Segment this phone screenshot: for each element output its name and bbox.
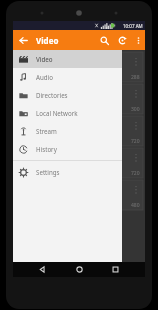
button[interactable]: Settings <box>13 163 122 181</box>
button[interactable]: More options <box>131 33 145 47</box>
button[interactable]: Recents <box>108 262 123 277</box>
staticText: 10:07 AM <box>123 23 143 29</box>
button[interactable]: History <box>13 140 122 158</box>
staticText: Audio <box>36 73 53 81</box>
button[interactable]: Search <box>95 31 113 49</box>
staticText: 720 <box>131 138 140 145</box>
staticText: 480 <box>131 202 140 209</box>
staticText: History <box>36 145 57 153</box>
button[interactable]: 288 <box>15 52 143 82</box>
button[interactable]: Back <box>13 30 33 50</box>
staticText: Local Network <box>36 109 78 117</box>
staticText: Stream <box>36 127 57 135</box>
staticText: 288 <box>131 74 140 81</box>
button[interactable]: Refresh <box>113 31 131 49</box>
button[interactable]: 480 <box>15 180 143 210</box>
staticText: 300 <box>131 106 140 113</box>
button[interactable]: 720 <box>15 148 143 178</box>
button[interactable]: Video <box>13 50 122 68</box>
button[interactable]: Stream <box>13 122 122 140</box>
button[interactable]: 300 <box>15 84 143 114</box>
button[interactable]: Back <box>35 262 50 277</box>
staticText: 720 <box>131 170 140 177</box>
button[interactable]: Directories <box>13 86 122 104</box>
button[interactable]: Close drawer <box>122 50 145 262</box>
button[interactable]: Audio <box>13 68 122 86</box>
staticText: Video <box>36 35 95 46</box>
button[interactable]: Home <box>72 262 87 277</box>
button[interactable]: 720 <box>15 116 143 146</box>
staticText: Video <box>36 55 53 63</box>
staticText: Settings <box>36 168 60 176</box>
button[interactable]: Local Network <box>13 104 122 122</box>
staticText: Directories <box>36 91 68 99</box>
